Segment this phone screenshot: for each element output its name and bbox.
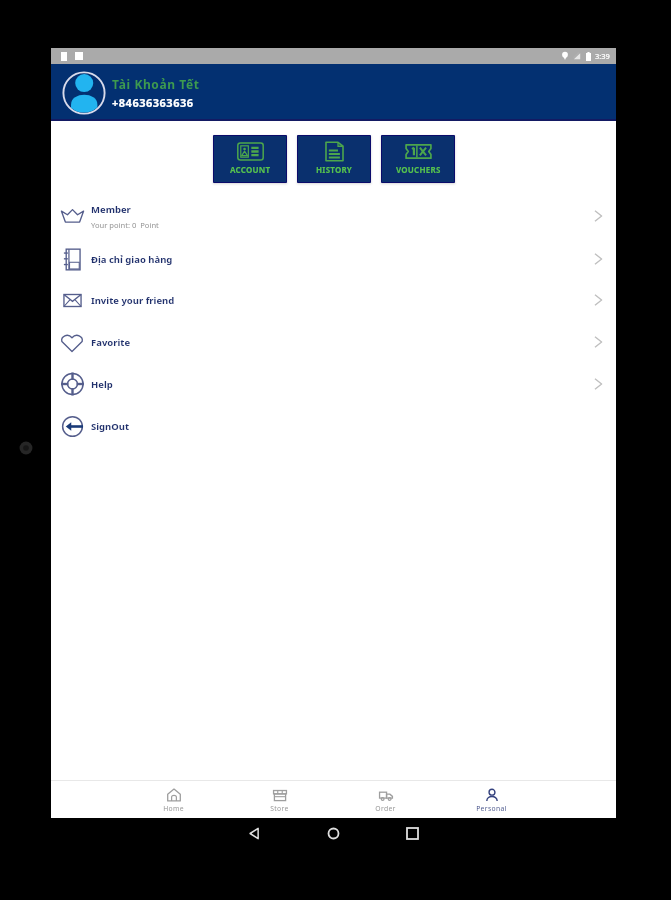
button[interactable]: Member <box>51 195 616 237</box>
button[interactable]: Order <box>332 781 438 819</box>
staticText: Help <box>91 378 113 391</box>
staticText: Favorite <box>91 336 131 349</box>
staticText: Your point: 0 Point <box>91 220 159 230</box>
button[interactable]: VOUCHERS <box>381 135 455 183</box>
button[interactable]: Invite your friend <box>51 279 616 321</box>
staticText: Store <box>270 804 289 813</box>
staticText: +84636363636 <box>112 95 194 110</box>
button[interactable]: Personal <box>438 781 544 819</box>
button[interactable]: Favorite <box>51 321 616 363</box>
staticText: Member <box>91 203 131 216</box>
button[interactable]: Home <box>294 818 373 848</box>
staticText: Order <box>375 804 396 813</box>
button[interactable]: Store <box>226 781 332 819</box>
button[interactable]: Recent apps <box>373 818 452 848</box>
staticText: Personal <box>476 804 507 813</box>
button[interactable]: Home <box>120 781 226 819</box>
button[interactable]: Địa chỉ giao hàng <box>51 238 616 280</box>
staticText: HISTORY <box>316 164 353 175</box>
staticText: Home <box>163 804 184 813</box>
button[interactable]: HISTORY <box>297 135 371 183</box>
staticText: SignOut <box>91 420 130 433</box>
staticText: Địa chỉ giao hàng <box>91 253 173 266</box>
button[interactable]: SignOut <box>51 405 616 447</box>
staticText: Tài Khoản Tết <box>112 76 200 92</box>
staticText: Invite your friend <box>91 294 175 307</box>
staticText: VOUCHERS <box>396 164 441 175</box>
staticText: ACCOUNT <box>230 164 271 175</box>
button[interactable]: Back <box>215 818 294 848</box>
button[interactable]: ACCOUNT <box>213 135 287 183</box>
staticText: 3:39 <box>595 51 610 61</box>
button[interactable]: Profile avatar <box>62 71 106 115</box>
button[interactable]: Help <box>51 363 616 405</box>
